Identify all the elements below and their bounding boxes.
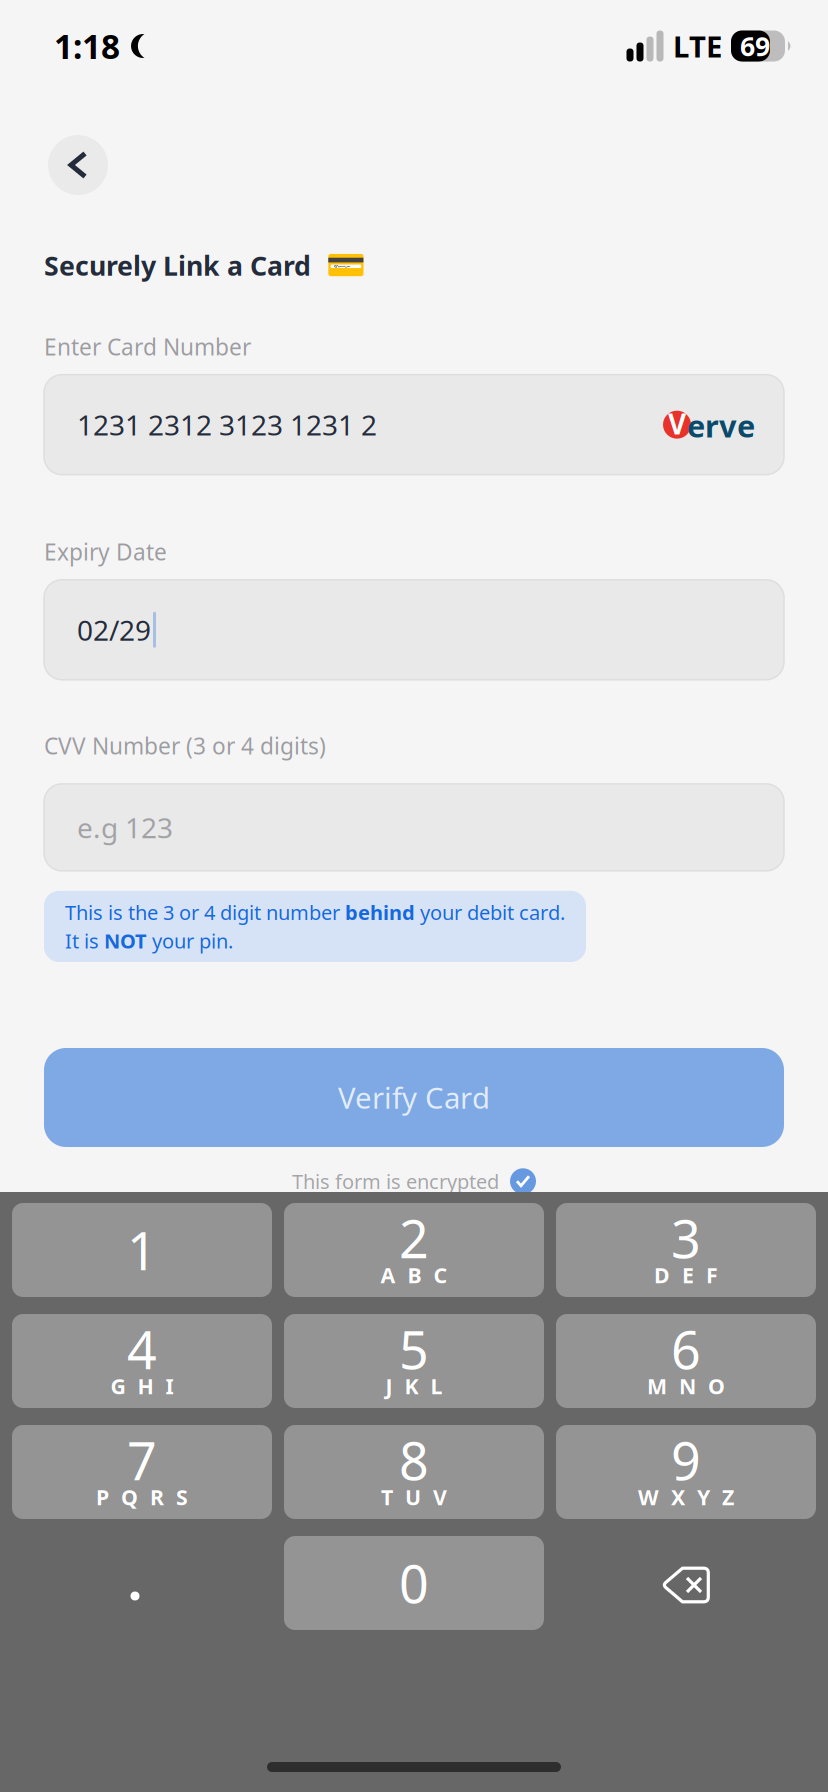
button[interactable]: 6: [556, 1314, 816, 1408]
button[interactable]: 8: [284, 1425, 544, 1519]
button[interactable]: Decimal point: [12, 1536, 272, 1630]
staticText: D E F: [654, 1261, 718, 1289]
button[interactable]: Back: [48, 135, 108, 195]
staticText: 69: [740, 28, 770, 64]
staticText: P Q R S: [96, 1483, 188, 1511]
staticText: 02/29: [77, 611, 151, 648]
staticText: 3: [671, 1203, 701, 1273]
staticText: V: [668, 405, 686, 442]
staticText: e.g 123: [77, 809, 173, 846]
button[interactable]: 5: [284, 1314, 544, 1408]
staticText: 8: [399, 1425, 429, 1495]
staticText: This is the 3 or 4 digit number behind y…: [65, 899, 565, 925]
button[interactable]: Delete: [556, 1536, 816, 1630]
staticText: Enter Card Number: [44, 332, 251, 362]
staticText: W X Y Z: [638, 1483, 734, 1511]
button[interactable]: 0: [284, 1536, 544, 1630]
staticText: G H I: [110, 1372, 173, 1400]
staticText: A B C: [380, 1261, 447, 1289]
button[interactable]: 2: [284, 1203, 544, 1297]
staticText: 1231 2312 3123 1231 2: [77, 406, 377, 443]
button[interactable]: Verify Card: [44, 1048, 784, 1147]
staticText: Verify Card: [338, 1078, 490, 1117]
button[interactable]: 7: [12, 1425, 272, 1519]
staticText: J K L: [385, 1372, 442, 1400]
staticText: 7: [127, 1425, 157, 1495]
staticText: Securely Link a Card: [44, 248, 311, 283]
button[interactable]: 1: [12, 1203, 272, 1297]
staticText: T U V: [381, 1483, 447, 1511]
staticText: 0: [399, 1548, 429, 1618]
staticText: LTE: [673, 26, 722, 65]
staticText: It is NOT your pin.: [65, 927, 233, 954]
staticText: CVV Number (3 or 4 digits): [44, 731, 326, 761]
staticText: 1: [127, 1215, 157, 1285]
button[interactable]: 9: [556, 1425, 816, 1519]
staticText: This form is encrypted: [292, 1168, 499, 1195]
staticText: 💳: [326, 247, 366, 284]
button[interactable]: 3: [556, 1203, 816, 1297]
staticText: M N O: [647, 1372, 725, 1400]
staticText: erve: [687, 405, 755, 446]
staticText: 4: [127, 1314, 157, 1384]
staticText: 9: [671, 1425, 701, 1495]
staticText: 6: [671, 1314, 701, 1384]
staticText: 1:18: [54, 24, 120, 68]
staticText: 5: [399, 1314, 429, 1384]
button[interactable]: 4: [12, 1314, 272, 1408]
staticText: Expiry Date: [44, 537, 167, 567]
staticText: 2: [399, 1203, 429, 1273]
